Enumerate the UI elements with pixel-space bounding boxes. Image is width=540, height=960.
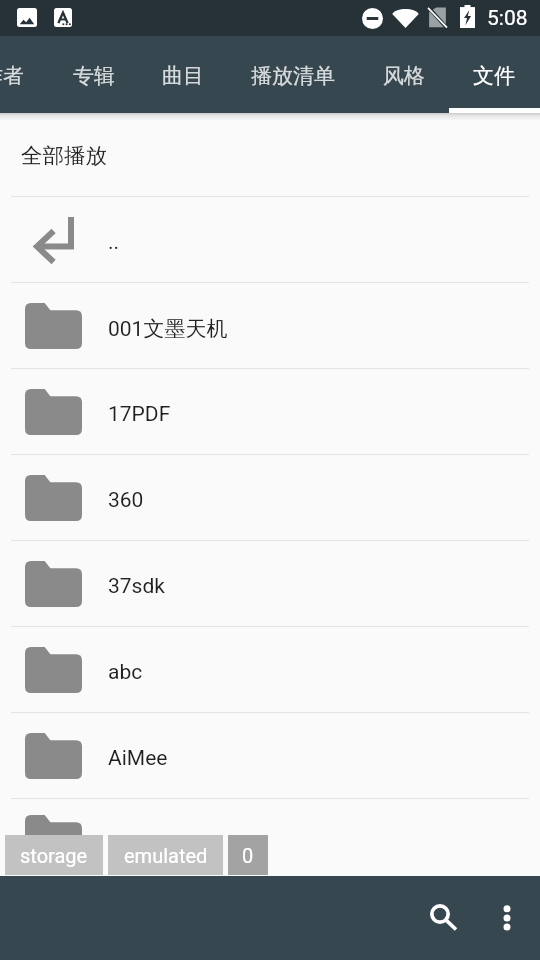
staticText: abc — [108, 660, 143, 685]
button[interactable]: storage — [5, 835, 103, 875]
staticText: 作者 — [0, 63, 24, 89]
staticText: 0 — [242, 844, 254, 867]
button[interactable]: Search — [416, 890, 464, 938]
button[interactable]: 全部播放 — [0, 113, 540, 196]
button[interactable] — [0, 799, 540, 876]
button[interactable]: 作者 — [0, 36, 25, 113]
staticText: storage — [20, 844, 88, 867]
button[interactable]: 37sdk — [0, 541, 540, 626]
staticText: 曲目 — [162, 63, 204, 89]
button[interactable]: 360 — [0, 455, 540, 540]
staticText: 17PDF — [108, 402, 171, 427]
button[interactable]: 文件 — [449, 36, 540, 113]
staticText: 专辑 — [73, 63, 115, 89]
staticText: 播放清单 — [251, 63, 335, 89]
button[interactable]: 专辑 — [50, 36, 139, 113]
button[interactable]: 0 — [228, 835, 268, 875]
staticText: 全部播放 — [21, 142, 107, 169]
staticText: 360 — [108, 488, 144, 513]
button[interactable]: 001文墨天机 — [0, 283, 540, 368]
button[interactable]: More options — [483, 890, 531, 938]
button[interactable]: 播放清单 — [228, 36, 360, 113]
staticText: 37sdk — [108, 574, 165, 599]
button[interactable]: 风格 — [360, 36, 449, 113]
staticText: 风格 — [383, 63, 425, 89]
button[interactable]: .. — [0, 197, 540, 282]
button[interactable]: emulated — [108, 835, 223, 875]
staticText: 5:08 — [487, 6, 528, 31]
button[interactable]: abc — [0, 627, 540, 712]
staticText: 001文墨天机 — [108, 316, 228, 342]
button[interactable]: 17PDF — [0, 369, 540, 454]
staticText: AiMee — [108, 746, 168, 771]
staticText: .. — [108, 230, 120, 255]
staticText: emulated — [124, 844, 208, 867]
staticText: 文件 — [473, 63, 515, 89]
button[interactable]: 曲目 — [139, 36, 228, 113]
button[interactable]: AiMee — [0, 713, 540, 798]
